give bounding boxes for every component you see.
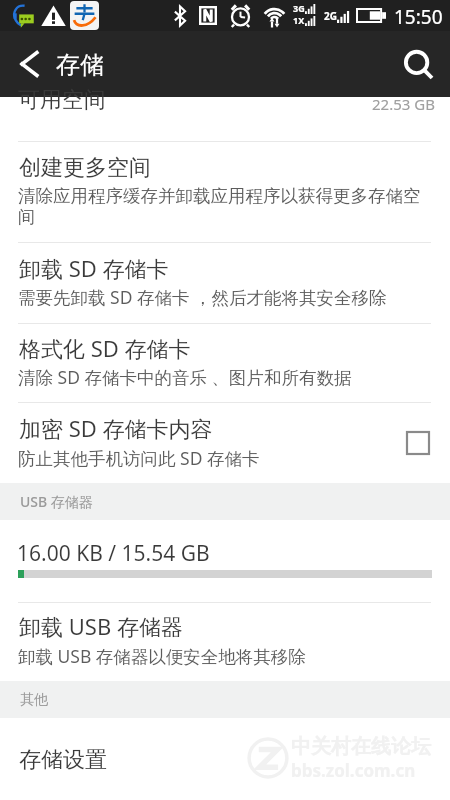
- staticText: 2G: [324, 9, 337, 23]
- staticText: bbs.zol.com.cn: [291, 759, 416, 782]
- button[interactable]: 创建更多空间: [0, 142, 450, 242]
- staticText: 3G: [293, 2, 305, 14]
- staticText: 存储: [56, 50, 104, 80]
- button[interactable]: 可用空间: [0, 97, 450, 141]
- button[interactable]: 格式化 SD 存储卡: [0, 324, 450, 402]
- staticText: 1X: [293, 14, 305, 26]
- staticText: 卸载 USB 存储器以便安全地将其移除: [18, 644, 429, 668]
- staticText: 卸载 SD 存储卡: [19, 253, 169, 283]
- button[interactable]: Search: [395, 37, 447, 89]
- staticText: 创建更多空间: [19, 154, 151, 182]
- staticText: 15:50: [394, 4, 443, 30]
- staticText: 格式化 SD 存储卡: [19, 333, 191, 363]
- staticText: 清除 SD 存储卡中的音乐 、图片和所有数据: [18, 365, 429, 389]
- button[interactable]: 加密 SD 存储卡内容: [0, 403, 450, 483]
- staticText: 清除应用程序缓存并卸载应用程序以获得更多存储空间: [18, 185, 429, 229]
- button[interactable]: 卸载 USB 存储器: [0, 603, 450, 681]
- staticText: USB 存储器: [20, 492, 93, 511]
- staticText: 防止其他手机访问此 SD 存储卡: [18, 446, 429, 470]
- staticText: 中关村在线论坛: [291, 734, 431, 759]
- button[interactable]: 卸载 SD 存储卡: [0, 243, 450, 323]
- staticText: 可用空间: [18, 86, 106, 114]
- button[interactable]: 16.00 KB / 15.54 GB: [0, 520, 450, 602]
- staticText: 16.00 KB / 15.54 GB: [17, 539, 210, 568]
- button[interactable]: Encrypt SD card content: [407, 432, 429, 454]
- staticText: 22.53 GB: [372, 94, 435, 114]
- button[interactable]: 存储设置: [0, 718, 450, 800]
- button[interactable]: Back: [6, 39, 54, 87]
- staticText: 其他: [20, 691, 48, 709]
- staticText: 加密 SD 存储卡内容: [19, 413, 213, 443]
- staticText: 存储设置: [19, 746, 107, 774]
- staticText: 卸载 USB 存储器: [19, 611, 183, 641]
- staticText: 需要先卸载 SD 存储卡 ，然后才能将其安全移除: [18, 285, 429, 309]
